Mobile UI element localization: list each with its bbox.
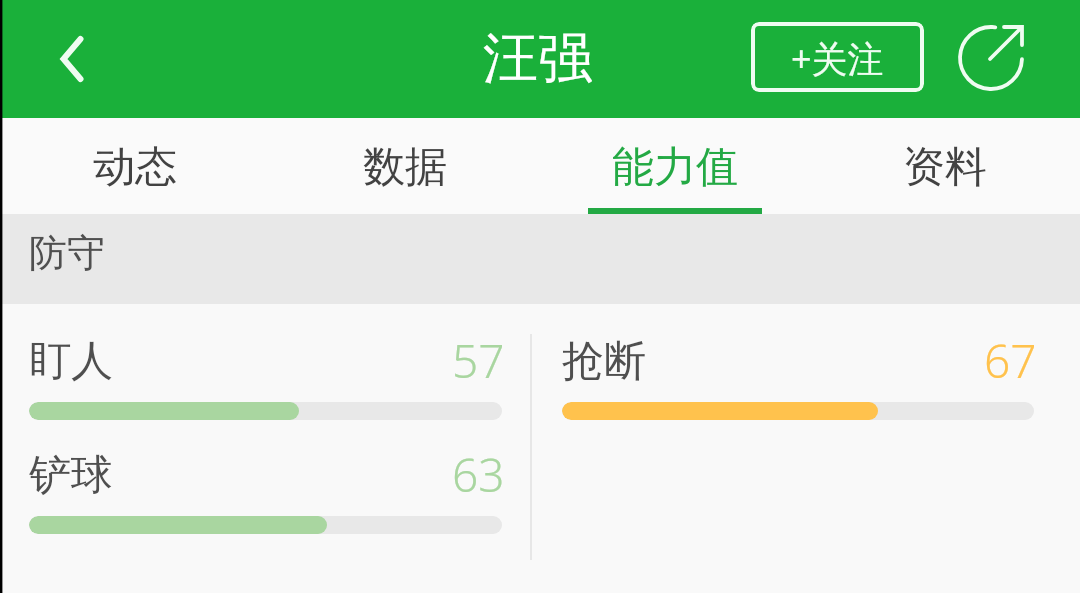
button[interactable]: Share [948, 15, 1034, 101]
button[interactable]: 动态 [0, 118, 270, 214]
staticText: 57 [452, 329, 505, 387]
button[interactable]: 资料 [810, 118, 1080, 214]
button[interactable]: 盯人 [29, 332, 502, 420]
staticText: 67 [984, 329, 1037, 387]
staticText: +关注 [791, 34, 884, 83]
button[interactable]: 抢断 [562, 332, 1034, 420]
staticText: 防守 [29, 229, 105, 277]
button[interactable]: Back [28, 15, 116, 103]
staticText: 能力值 [612, 141, 738, 194]
button[interactable]: 铲球 [29, 446, 502, 534]
button[interactable]: +关注 [751, 22, 924, 92]
staticText: 汪强 [483, 24, 593, 93]
staticText: 抢断 [562, 335, 646, 388]
button[interactable]: 能力值 [540, 118, 810, 214]
staticText: 铲球 [29, 449, 113, 502]
staticText: 动态 [93, 141, 177, 194]
staticText: 数据 [363, 141, 447, 194]
staticText: 资料 [903, 141, 987, 194]
staticText: 63 [452, 443, 505, 501]
button[interactable]: 数据 [270, 118, 540, 214]
staticText: 盯人 [29, 335, 113, 388]
